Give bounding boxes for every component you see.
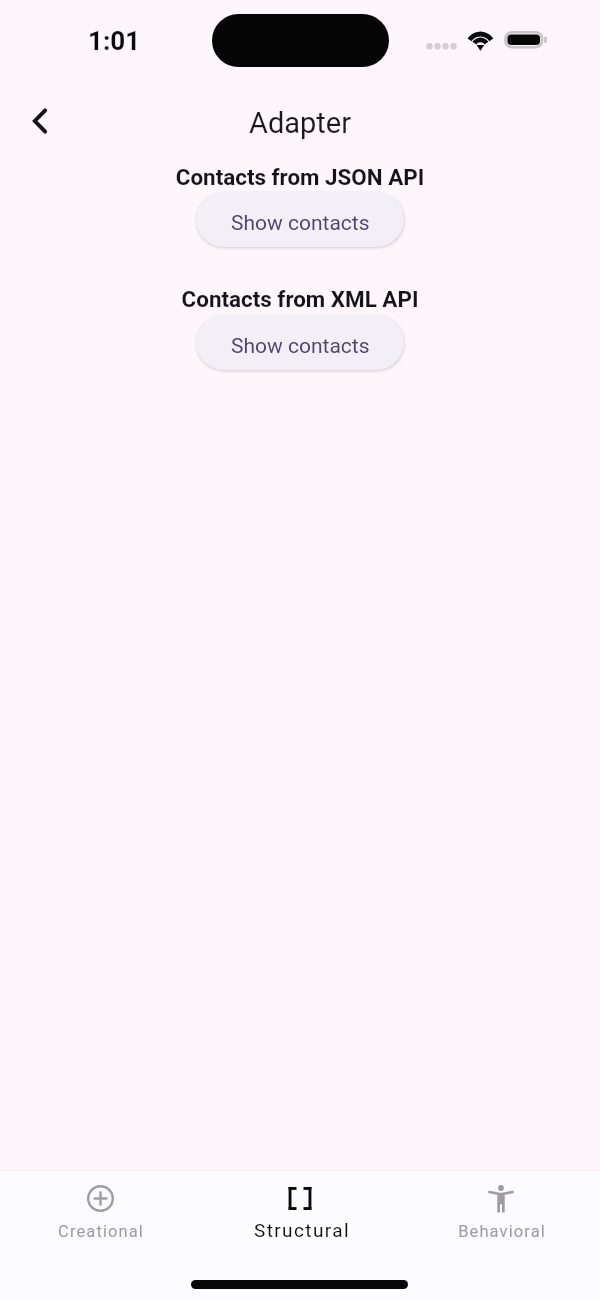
button[interactable]: Behavioral: [431, 1171, 571, 1256]
button[interactable]: Back: [18, 99, 62, 143]
staticText: Adapter: [0, 106, 600, 140]
staticText: Structural: [232, 1219, 372, 1241]
staticText: 1:01: [88, 26, 141, 56]
button[interactable]: Show contacts: [196, 315, 404, 370]
staticText: Contacts from JSON API: [0, 164, 600, 190]
staticText: Contacts from XML API: [0, 286, 600, 312]
staticText: Behavioral: [432, 1222, 572, 1241]
staticText: Show contacts: [231, 334, 370, 359]
staticText: Creational: [31, 1222, 171, 1241]
button[interactable]: Show contacts: [196, 192, 404, 247]
button[interactable]: Creational: [30, 1171, 170, 1256]
button[interactable]: Structural: [230, 1171, 370, 1256]
staticText: Show contacts: [231, 211, 370, 236]
